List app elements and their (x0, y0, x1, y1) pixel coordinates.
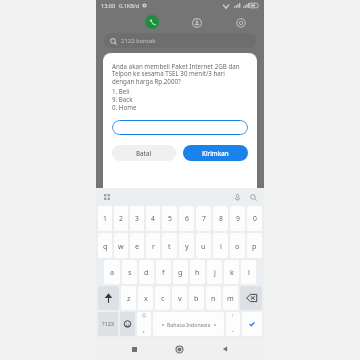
button[interactable]: p (247, 233, 262, 258)
staticText: x (144, 293, 148, 303)
button[interactable]: k (224, 260, 239, 284)
button[interactable]: 2 (114, 206, 128, 231)
button[interactable]: e (130, 233, 144, 258)
button[interactable]: g (173, 260, 188, 284)
staticText: 8 (219, 214, 223, 223)
button[interactable]: Dial (145, 15, 159, 29)
button[interactable]: 5 (162, 206, 177, 231)
staticText: e (135, 241, 140, 251)
button[interactable]: 6 (179, 206, 194, 231)
button[interactable]: Shift (98, 286, 119, 310)
button[interactable]: x (138, 286, 153, 310)
button[interactable]: 7 (196, 206, 211, 231)
button[interactable]: d (139, 260, 154, 284)
staticText: 2 (119, 214, 123, 223)
button[interactable] (112, 120, 248, 135)
button[interactable]: m (223, 286, 238, 310)
staticText: d (144, 267, 149, 277)
button[interactable]: 0 (247, 206, 262, 231)
staticText: o (235, 241, 240, 251)
staticText: i (220, 241, 222, 251)
button[interactable]: 4 (146, 206, 160, 231)
button[interactable]: ! (226, 312, 240, 336)
button[interactable]: Home (172, 342, 186, 356)
button[interactable]: h (190, 260, 205, 284)
button[interactable]: Recents (127, 342, 141, 356)
button[interactable]: 1 (98, 206, 112, 231)
button[interactable]: n (206, 286, 221, 310)
staticText: c (161, 293, 165, 303)
staticText: ! (232, 313, 234, 319)
staticText: 4 (151, 214, 155, 223)
staticText: w (118, 241, 124, 251)
staticText: p (252, 241, 257, 251)
staticText: 1. Beli (112, 87, 130, 95)
button[interactable]: ☺ (137, 312, 151, 336)
staticText: l (248, 267, 250, 277)
button[interactable]: y (179, 233, 194, 258)
staticText: n (211, 293, 216, 303)
button[interactable]: q (98, 233, 112, 258)
button[interactable]: Enter (242, 312, 262, 336)
button[interactable]: Settings (234, 16, 247, 29)
button[interactable]: s (122, 260, 137, 284)
staticText: 9 (236, 214, 240, 223)
button[interactable]: Voice input (232, 192, 242, 202)
button[interactable]: l (241, 260, 256, 284)
staticText: . (232, 325, 234, 334)
button[interactable]: Contacts (190, 16, 203, 29)
button[interactable]: z (121, 286, 136, 310)
button[interactable]: Search (248, 192, 258, 202)
button[interactable]: i (213, 233, 228, 258)
staticText: 7 (202, 214, 206, 223)
staticText: z (127, 293, 131, 303)
staticText: v (178, 293, 182, 303)
staticText: 6 (185, 214, 189, 223)
staticText: ?123 (102, 320, 115, 328)
button[interactable]: Backspace (240, 286, 262, 310)
staticText: Bahasa Indonesia (167, 321, 211, 328)
button[interactable]: t (162, 233, 177, 258)
button[interactable]: Emoji (120, 312, 135, 336)
button[interactable]: v (172, 286, 187, 310)
staticText: Batal (136, 149, 152, 157)
staticText: k (230, 267, 234, 277)
button[interactable]: ?123 (98, 312, 118, 336)
button[interactable]: b (189, 286, 204, 310)
staticText: m (227, 293, 234, 303)
staticText: Anda akan membeli Paket Internet 2GB dan… (112, 62, 248, 86)
button[interactable]: 3 (130, 206, 144, 231)
button[interactable]: 2122 kontak (104, 33, 256, 48)
staticText: a (110, 267, 115, 277)
button[interactable]: Bahasa Indonesia (153, 312, 224, 336)
staticText: ☺ (142, 313, 147, 318)
staticText: 3 (135, 214, 139, 223)
staticText: h (195, 267, 200, 277)
button[interactable]: w (114, 233, 128, 258)
staticText: , (143, 325, 145, 334)
button[interactable]: 8 (213, 206, 228, 231)
staticText: f (162, 267, 165, 277)
button[interactable]: Batal (112, 145, 176, 161)
staticText: y (185, 241, 189, 251)
staticText: 9. Back (112, 95, 133, 103)
button[interactable]: c (155, 286, 170, 310)
button[interactable]: 9 (230, 206, 245, 231)
button[interactable]: a (104, 260, 120, 284)
staticText: s (128, 267, 132, 277)
button[interactable]: j (207, 260, 222, 284)
button[interactable]: u (196, 233, 211, 258)
staticText: Kirimkan (202, 149, 229, 157)
button[interactable]: Kirimkan (183, 145, 248, 161)
button[interactable]: r (146, 233, 160, 258)
button[interactable]: f (156, 260, 171, 284)
staticText: 0 (253, 214, 257, 223)
staticText: b (194, 293, 199, 303)
staticText: u (201, 241, 206, 251)
staticText: 5 (168, 214, 172, 223)
button[interactable]: o (230, 233, 245, 258)
button[interactable]: Back (218, 342, 232, 356)
staticText: q (103, 241, 108, 251)
staticText: t (168, 241, 171, 251)
button[interactable]: Clipboard (102, 192, 111, 201)
